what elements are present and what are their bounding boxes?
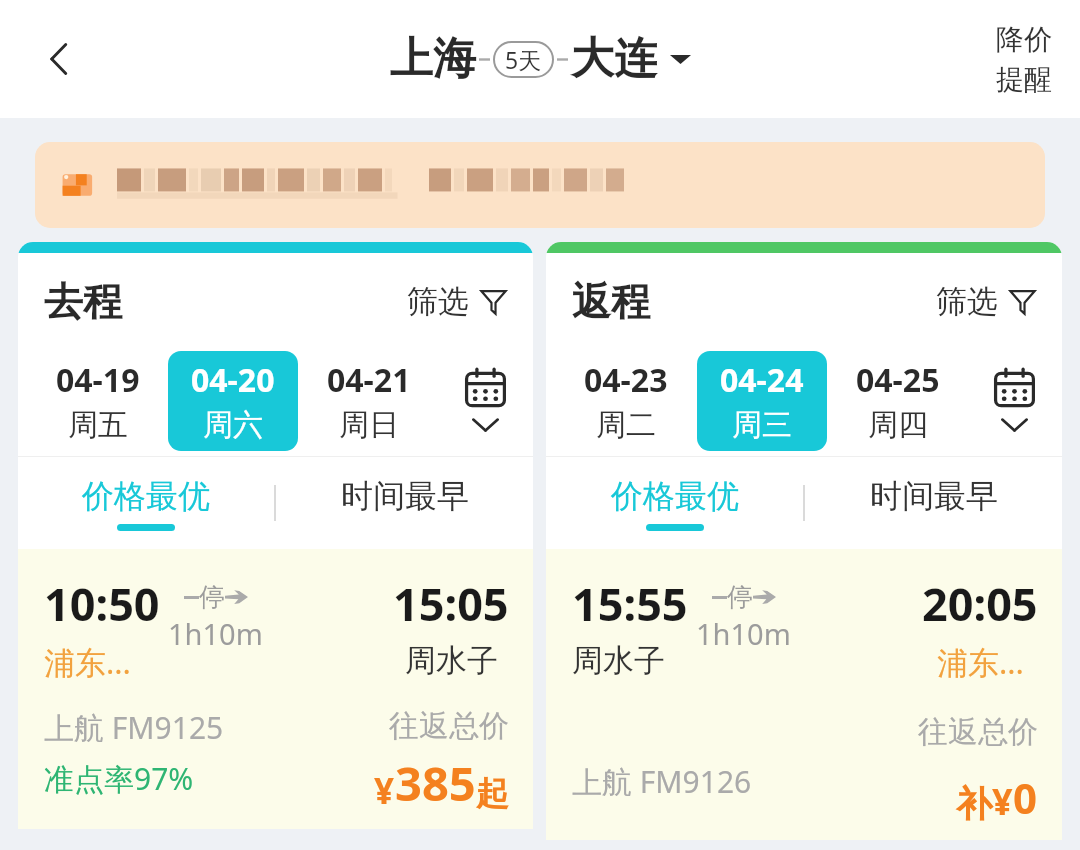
staticText: 10:50 bbox=[44, 573, 160, 634]
staticText: 往返总价 bbox=[918, 713, 1038, 751]
staticText: 价格最优 bbox=[82, 476, 210, 516]
button[interactable]: 04-23 bbox=[561, 351, 691, 451]
button[interactable]: Open calendar bbox=[437, 346, 533, 456]
button[interactable]: 04-25 bbox=[833, 351, 963, 451]
staticText: 浦东... bbox=[44, 641, 131, 683]
button[interactable]: 10:50 bbox=[18, 549, 533, 829]
button[interactable]: 筛选 bbox=[402, 277, 513, 326]
staticText: 周二 bbox=[596, 406, 656, 444]
staticText: 周水子 bbox=[572, 641, 665, 680]
button[interactable]: 筛选 bbox=[931, 277, 1042, 326]
staticText: 提醒 bbox=[996, 62, 1052, 97]
button[interactable]: 04-24 bbox=[697, 351, 827, 451]
staticText: 04-20 bbox=[191, 358, 275, 402]
staticText: 20:05 bbox=[922, 573, 1038, 634]
staticText: 5天 bbox=[505, 44, 542, 75]
button[interactable]: 15:55 bbox=[546, 549, 1062, 840]
button[interactable]: 降价 bbox=[990, 16, 1058, 103]
staticText: 往返总价 bbox=[389, 707, 509, 745]
staticText: 周四 bbox=[868, 406, 928, 444]
staticText: 浦东... bbox=[937, 641, 1024, 683]
button[interactable]: 价格最优 bbox=[546, 457, 803, 549]
button[interactable]: 时间最早 bbox=[805, 457, 1062, 549]
button[interactable]: Promotion banner bbox=[35, 142, 1045, 228]
staticText: ¥ bbox=[374, 767, 395, 815]
button[interactable]: Open calendar bbox=[966, 346, 1062, 456]
staticText: ¥ bbox=[992, 777, 1013, 826]
staticText: 时间最早 bbox=[341, 476, 469, 516]
button[interactable]: Back bbox=[22, 21, 98, 97]
staticText: 1h10m bbox=[696, 614, 791, 653]
staticText: 筛选 bbox=[936, 282, 998, 321]
staticText: 筛选 bbox=[407, 282, 469, 321]
staticText: 周三 bbox=[732, 406, 792, 444]
staticText: 停 bbox=[727, 581, 753, 614]
staticText: 返程 bbox=[572, 277, 650, 326]
staticText: 04-25 bbox=[856, 358, 940, 402]
staticText: 起 bbox=[476, 773, 509, 815]
staticText: 价格最优 bbox=[611, 476, 739, 516]
staticText: 04-24 bbox=[720, 358, 804, 402]
staticText: 上航 FM9126 bbox=[572, 761, 752, 802]
button[interactable]: 上海 bbox=[390, 32, 691, 86]
staticText: 停 bbox=[199, 581, 225, 614]
staticText: 周水子 bbox=[405, 641, 498, 680]
staticText: 04-19 bbox=[56, 358, 140, 402]
button[interactable]: 04-20 bbox=[168, 351, 298, 451]
button[interactable]: 04-21 bbox=[304, 351, 434, 451]
staticText: 385 bbox=[395, 751, 476, 815]
button[interactable]: 时间最早 bbox=[276, 457, 533, 549]
staticText: 周五 bbox=[68, 406, 128, 444]
staticText: 降价 bbox=[996, 22, 1052, 57]
staticText: 15:55 bbox=[572, 573, 688, 634]
button[interactable]: 04-19 bbox=[33, 351, 162, 451]
staticText: 0 bbox=[1013, 769, 1038, 826]
staticText: 周日 bbox=[339, 406, 399, 444]
staticText: 1h10m bbox=[168, 614, 263, 653]
staticText: 大连 bbox=[571, 32, 657, 86]
staticText: 时间最早 bbox=[870, 476, 998, 516]
staticText: 去程 bbox=[44, 277, 122, 326]
staticText: 04-23 bbox=[584, 358, 668, 402]
staticText: 上航 FM9125 bbox=[44, 707, 224, 748]
staticText: 准点率97% bbox=[44, 758, 194, 799]
staticText: 15:05 bbox=[393, 573, 509, 634]
staticText: 上海 bbox=[390, 32, 476, 86]
staticText: 周六 bbox=[203, 406, 263, 444]
staticText: 04-21 bbox=[327, 358, 411, 402]
button[interactable]: 价格最优 bbox=[18, 457, 274, 549]
staticText: 补 bbox=[956, 781, 992, 826]
